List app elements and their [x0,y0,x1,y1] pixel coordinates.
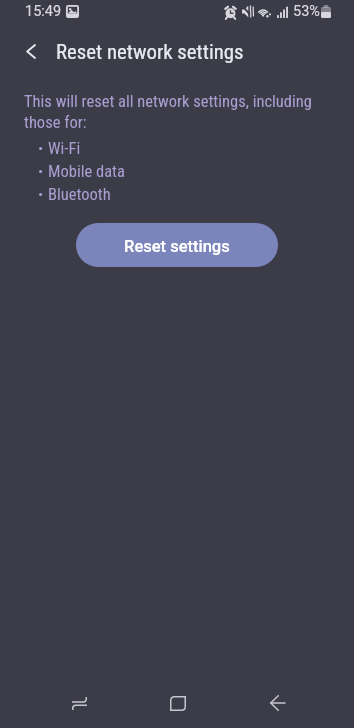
staticText: Bluetooth [48,185,111,203]
button[interactable]: Reset settings [76,223,278,267]
staticText: Mobile data [48,162,125,180]
button[interactable]: Back [253,679,301,727]
staticText: Reset settings [124,237,230,256]
staticText: those for: [24,113,87,132]
staticText: This will reset all network settings, in… [24,92,312,111]
staticText: Reset network settings [56,40,244,64]
button[interactable]: Home [154,679,202,727]
button[interactable]: Recent apps [55,679,103,727]
button[interactable]: Navigate up [12,32,50,70]
staticText: 53% [293,3,320,20]
staticText: Wi-Fi [48,139,81,157]
staticText: 15:49 [25,3,62,20]
